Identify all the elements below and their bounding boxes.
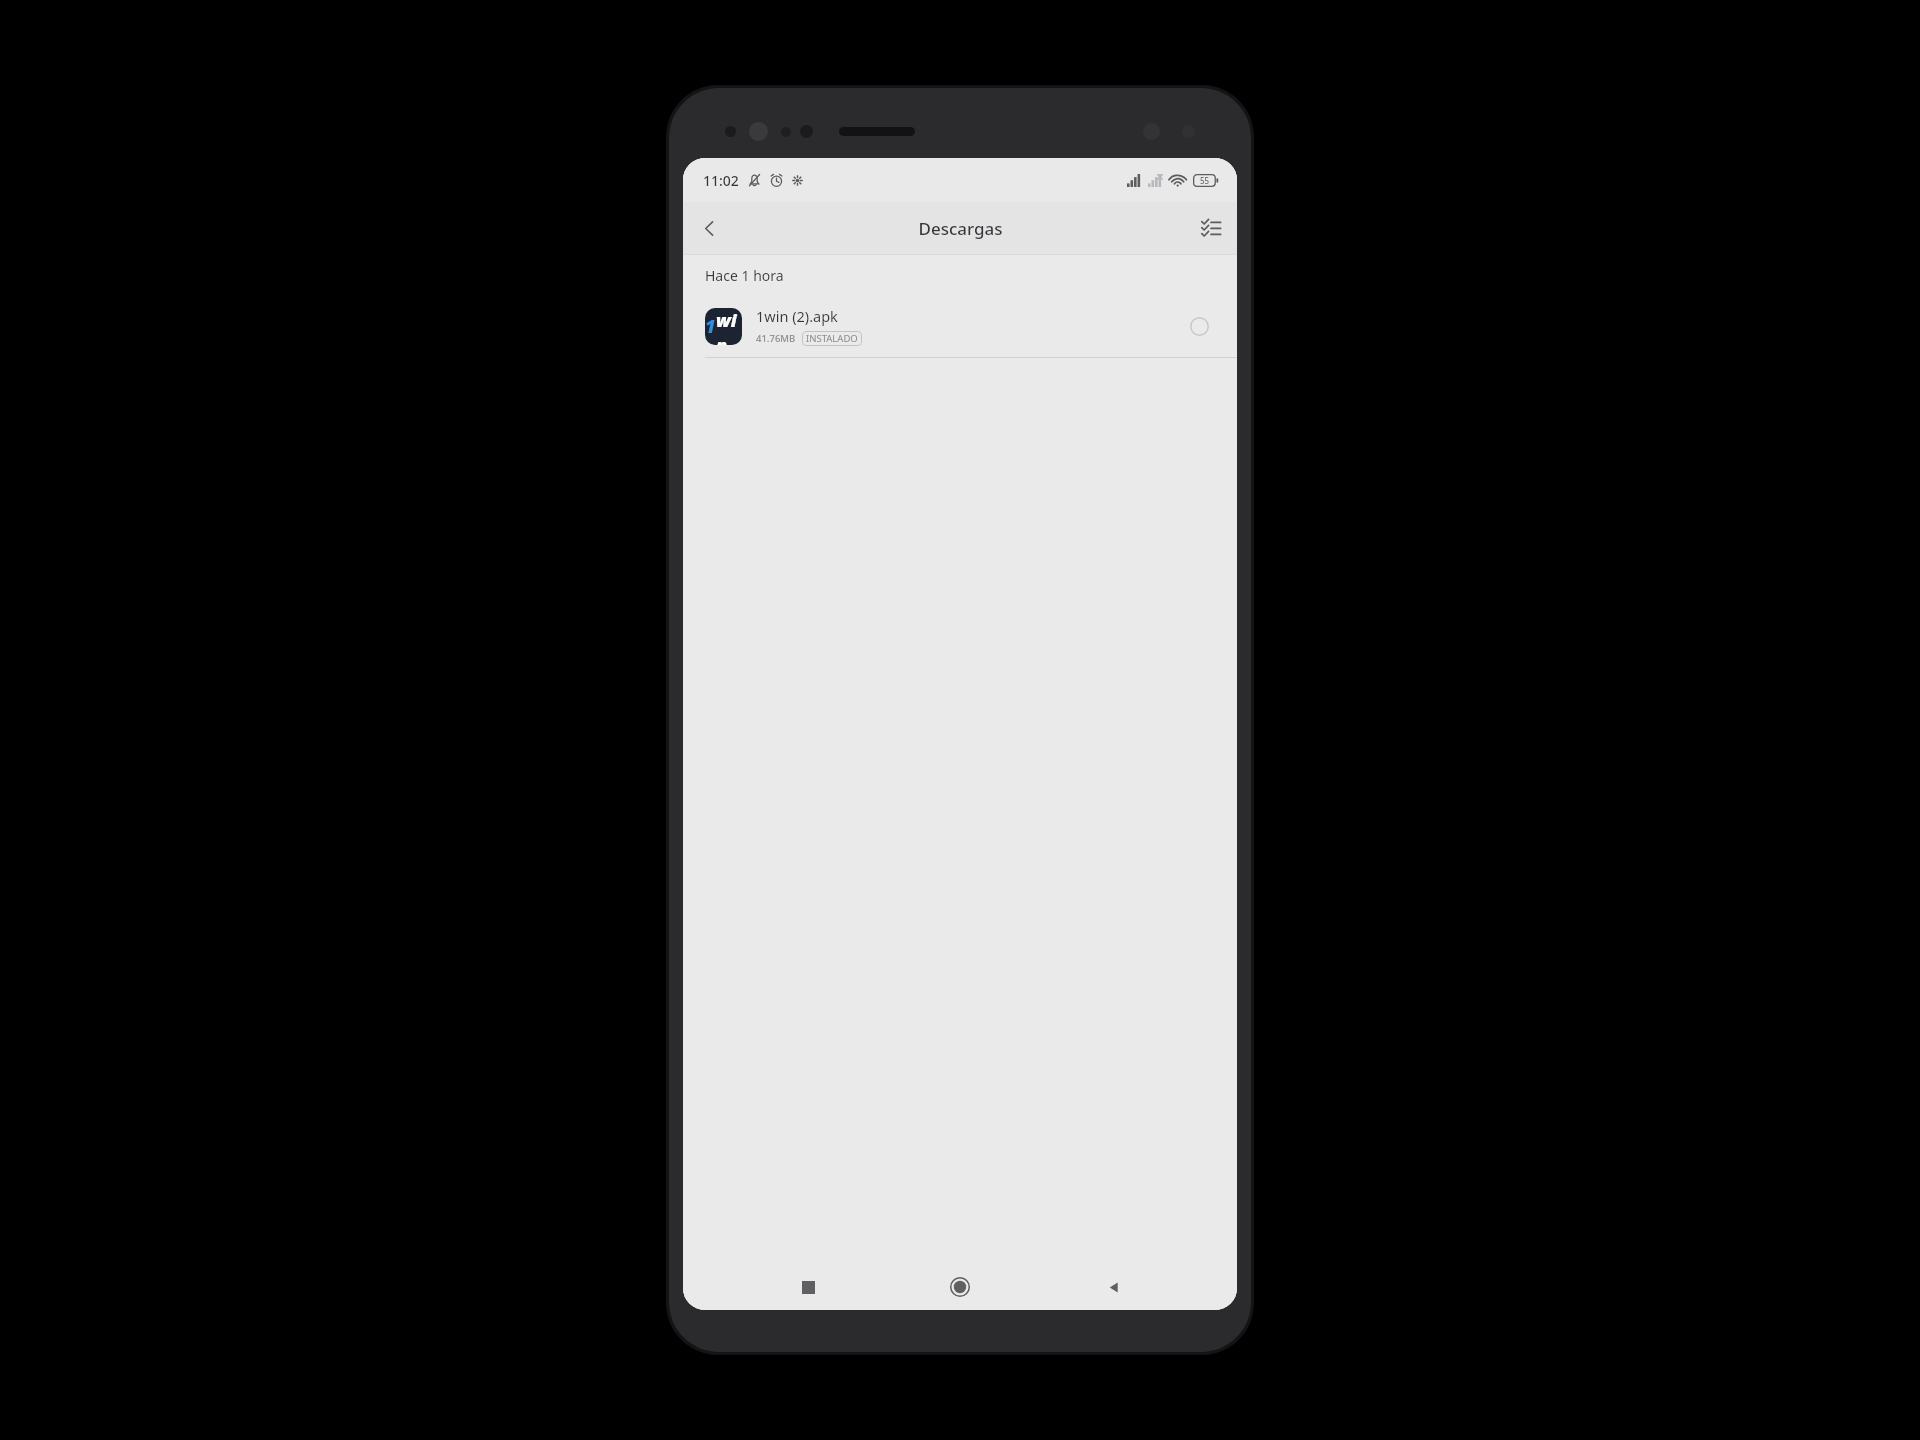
button[interactable]: Back (1085, 1264, 1141, 1310)
button[interactable]: Select (1181, 308, 1217, 344)
staticText: Descargas (918, 217, 1003, 240)
staticText: 1 (705, 314, 716, 339)
staticText: 55 (1200, 175, 1210, 186)
staticText: win (716, 308, 742, 345)
staticText: 11:02 (703, 171, 739, 190)
staticText: 1win (2).apk (756, 306, 838, 326)
button[interactable]: 1 (683, 295, 1237, 357)
staticText: Hace 1 hora (705, 266, 784, 285)
staticText: INSTALADO (806, 332, 858, 345)
button[interactable]: Recents (780, 1264, 836, 1310)
button[interactable]: Select items (1185, 202, 1237, 254)
staticText: 41.76MB (756, 332, 796, 345)
button[interactable]: Back (683, 202, 735, 254)
button[interactable]: Home (932, 1264, 988, 1310)
